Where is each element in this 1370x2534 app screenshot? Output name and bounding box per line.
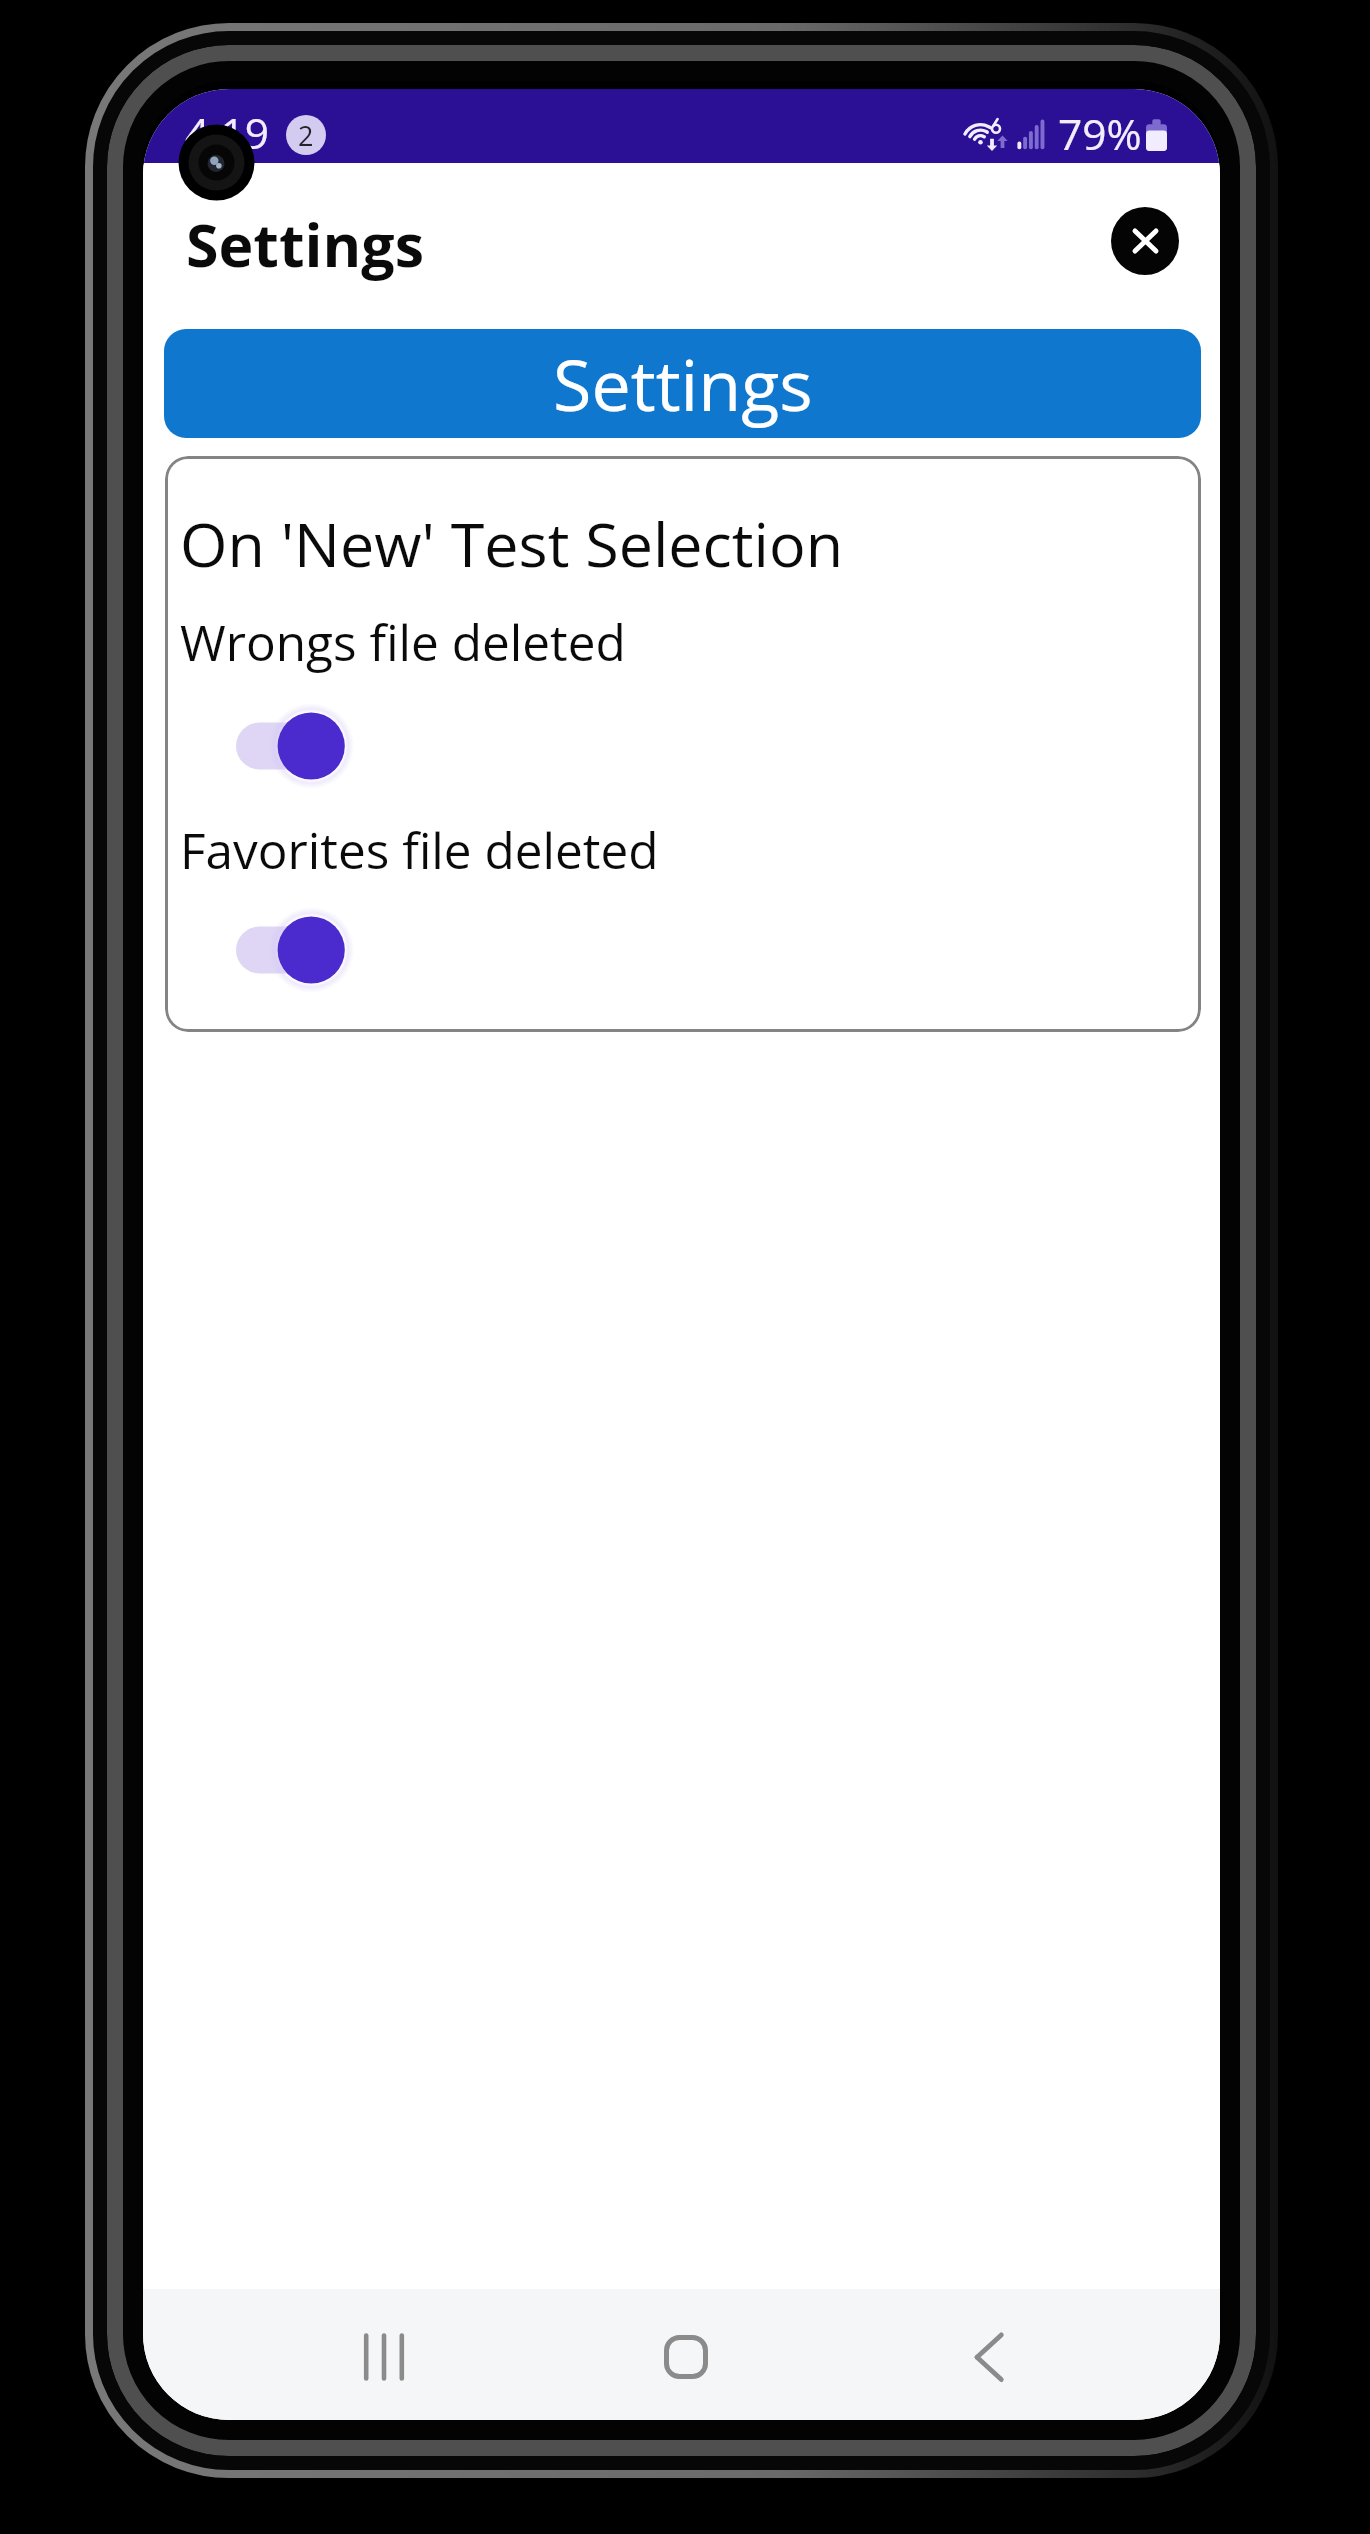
staticText: 4:19 bbox=[185, 104, 270, 162]
staticText: Favorites file deleted bbox=[180, 816, 659, 883]
staticText: 79% bbox=[1058, 105, 1142, 163]
button[interactable]: Toggle bbox=[236, 708, 356, 784]
button[interactable]: Recent apps bbox=[339, 2312, 429, 2402]
button[interactable]: Toggle bbox=[236, 912, 356, 988]
button[interactable]: Close bbox=[1111, 207, 1179, 275]
button[interactable]: Home bbox=[641, 2312, 731, 2402]
button[interactable]: Back bbox=[944, 2312, 1034, 2402]
staticText: Wrongs file deleted bbox=[180, 608, 626, 675]
staticText: Settings bbox=[553, 336, 813, 431]
button[interactable]: Settings bbox=[164, 329, 1201, 438]
staticText: Settings bbox=[186, 204, 425, 284]
staticText: On 'New' Test Selection bbox=[180, 502, 844, 585]
staticText: 2 bbox=[298, 117, 314, 154]
